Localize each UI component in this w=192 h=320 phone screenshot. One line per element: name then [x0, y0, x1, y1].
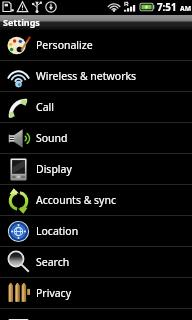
- staticText: Privacy: [36, 286, 72, 300]
- button[interactable]: Storage: [0, 309, 192, 320]
- staticText: Display: [36, 162, 72, 176]
- staticText: AM: [180, 4, 192, 13]
- button[interactable]: Privacy: [0, 278, 192, 308]
- staticText: Wireless & networks: [36, 69, 137, 83]
- button[interactable]: Call: [0, 92, 192, 122]
- staticText: Sound: [36, 131, 68, 145]
- staticText: Accounts & sync: [36, 193, 116, 207]
- button[interactable]: Personalize: [0, 30, 192, 60]
- button[interactable]: Wireless & networks: [0, 61, 192, 91]
- staticText: Search: [36, 255, 70, 269]
- button[interactable]: Search: [0, 247, 192, 277]
- button[interactable]: Display: [0, 154, 192, 184]
- staticText: 7:51: [157, 1, 177, 14]
- button[interactable]: Location: [0, 216, 192, 246]
- staticText: Personalize: [36, 38, 93, 52]
- button[interactable]: Accounts & sync: [0, 185, 192, 215]
- staticText: Call: [36, 100, 54, 114]
- staticText: Location: [36, 224, 79, 238]
- staticText: Settings: [3, 16, 40, 28]
- button[interactable]: Sound: [0, 123, 192, 153]
